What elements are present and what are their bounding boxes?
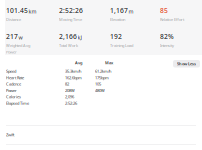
staticText: Training Load (110, 43, 133, 48)
staticText: Power (6, 88, 17, 93)
staticText: Cadence (6, 81, 21, 87)
staticText: 192 (110, 32, 122, 41)
staticText: Distance (6, 17, 21, 22)
staticText: Intensity (160, 43, 174, 48)
staticText: Relative Effort (160, 17, 184, 22)
staticText: Weighted Avg (6, 43, 30, 48)
staticText: Power (6, 49, 17, 55)
staticText: Show Less (177, 61, 196, 66)
staticText: 208W (65, 88, 75, 93)
staticText: Elapsed Time (6, 100, 29, 106)
staticText: kJ (77, 34, 81, 41)
staticText: 82 (65, 81, 69, 87)
staticText: Avg (75, 60, 83, 65)
staticText: 162.6bpm (65, 75, 82, 80)
staticText: m (128, 8, 133, 15)
staticText: w (18, 34, 22, 41)
staticText: 61.2km/h (95, 68, 111, 74)
staticText: Elevation (110, 17, 125, 22)
staticText: Max (105, 60, 113, 65)
staticText: 2,166 (59, 32, 77, 41)
staticText: km (28, 8, 36, 15)
staticText: Zwift (6, 132, 14, 137)
staticText: 101.45 (6, 6, 28, 15)
staticText: 105 (95, 81, 101, 87)
staticText: 85 (160, 6, 168, 15)
staticText: 35.3km/h (65, 68, 81, 74)
staticText: 82% (160, 32, 174, 41)
staticText: Total Work (59, 43, 78, 48)
staticText: 175bpm (95, 75, 109, 80)
staticText: Speed (6, 68, 16, 74)
staticText: 1,167 (110, 6, 128, 15)
staticText: Moving Time (59, 17, 82, 22)
staticText: 2,096 (65, 94, 74, 99)
button[interactable]: Show Less (173, 60, 200, 67)
staticText: Calories (6, 94, 21, 99)
staticText: 217 (6, 32, 18, 41)
staticText: 2:52:26 (65, 100, 77, 106)
staticText: Heart Rate (6, 75, 24, 80)
staticText: 2:52:26 (59, 6, 83, 15)
staticText: 480W (95, 88, 105, 93)
